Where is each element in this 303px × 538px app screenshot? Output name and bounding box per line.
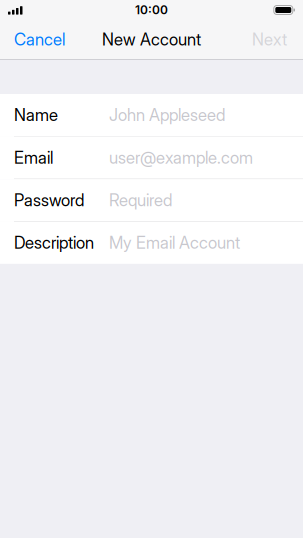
staticText: Cancel xyxy=(14,29,65,50)
staticText: My Email Account xyxy=(109,233,240,253)
staticText: Email xyxy=(14,147,53,168)
staticText: Name xyxy=(14,105,58,125)
staticText: Required xyxy=(109,190,172,210)
staticText: Description xyxy=(14,233,94,253)
staticText: New Account xyxy=(102,29,201,50)
button[interactable]: Description xyxy=(0,222,303,264)
staticText: John Appleseed xyxy=(109,105,225,125)
button[interactable]: Password xyxy=(0,179,303,222)
staticText: Password xyxy=(14,190,84,210)
button[interactable]: Name xyxy=(0,94,303,137)
staticText: user@example.com xyxy=(109,147,253,168)
button[interactable]: Cancel xyxy=(0,19,81,60)
staticText: Next xyxy=(252,29,287,50)
staticText: 10:00 xyxy=(135,3,168,17)
button[interactable]: Next xyxy=(240,19,303,60)
button[interactable]: Email xyxy=(0,137,303,179)
